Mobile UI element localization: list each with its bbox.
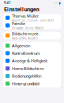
staticText: Kontrollzentrum	[12, 50, 40, 56]
button[interactable]: Thomas Müller	[3, 14, 61, 22]
button[interactable]: Kontrollzentrum	[3, 49, 61, 57]
staticText: Bildschirmzeit	[12, 31, 38, 36]
staticText: Familie	[12, 21, 25, 26]
staticText: Allgemein	[12, 43, 30, 48]
button[interactable]: Anzeige & Helligkeit	[3, 57, 61, 65]
staticText: Hintergrundbild	[12, 81, 39, 86]
staticText: ◦◦ ▮	[54, 1, 60, 4]
button[interactable]: Familie	[3, 22, 61, 29]
staticText: Anzeige & Helligkeit	[12, 58, 47, 63]
staticText: Apple-ID, iCloud+ und mehr	[12, 19, 54, 22]
button[interactable]: Allgemein	[3, 42, 61, 49]
staticText: Verwalte deine Familie	[12, 26, 44, 30]
staticText: Einstellungen	[4, 6, 39, 13]
staticText: 9:41	[4, 1, 11, 5]
button[interactable]: Home-Bildschirm	[3, 65, 61, 72]
button[interactable]: Bildschirmzeit	[3, 32, 61, 39]
button[interactable]: Hintergrundbild	[3, 80, 61, 87]
button[interactable]: Bedienungshilfen	[3, 72, 61, 80]
staticText: Home-Bildschirm	[12, 66, 44, 71]
staticText: Thomas Müller	[12, 13, 39, 19]
staticText: App-Limits, Auszeit	[12, 36, 38, 40]
staticText: Bedienungshilfen	[12, 73, 41, 79]
